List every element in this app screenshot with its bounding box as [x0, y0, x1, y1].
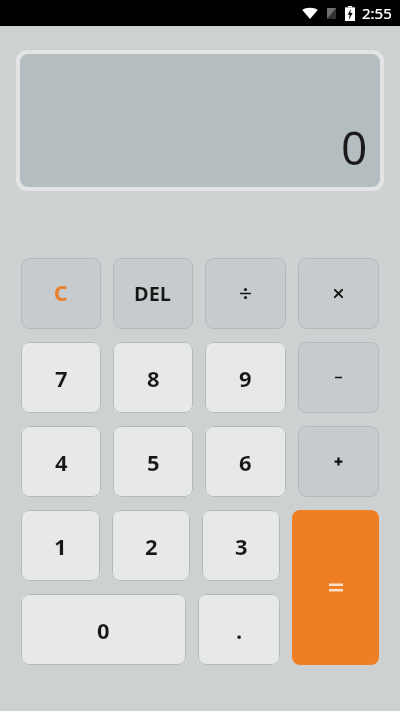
- staticText: 2: [145, 531, 158, 561]
- staticText: 5: [147, 447, 160, 477]
- button[interactable]: 5: [113, 426, 193, 497]
- button[interactable]: C: [21, 258, 101, 329]
- button[interactable]: 3: [202, 510, 280, 581]
- button[interactable]: 7: [21, 342, 101, 413]
- button[interactable]: .: [198, 594, 280, 665]
- staticText: 7: [55, 363, 68, 393]
- staticText: .: [236, 615, 243, 645]
- staticText: 2:55: [362, 3, 392, 23]
- staticText: 6: [239, 447, 252, 477]
- button[interactable]: 0: [21, 594, 186, 665]
- button[interactable]: 8: [113, 342, 193, 413]
- staticText: 0: [341, 116, 368, 179]
- button[interactable]: 2: [112, 510, 190, 581]
- button[interactable]: 6: [205, 426, 286, 497]
- staticText: 0: [97, 615, 110, 645]
- button[interactable]: Multiply: [298, 258, 379, 329]
- button[interactable]: Minus: [298, 342, 379, 413]
- button[interactable]: Divide: [205, 258, 286, 329]
- staticText: DEL: [134, 280, 172, 307]
- button[interactable]: 9: [205, 342, 286, 413]
- staticText: C: [54, 279, 68, 308]
- button[interactable]: 1: [21, 510, 100, 581]
- staticText: 3: [235, 531, 248, 561]
- staticText: 8: [147, 363, 160, 393]
- staticText: 4: [55, 447, 68, 477]
- staticText: 1: [54, 531, 67, 561]
- button[interactable]: Equals: [292, 510, 379, 665]
- staticText: 9: [239, 363, 252, 393]
- button[interactable]: DEL: [113, 258, 193, 329]
- button[interactable]: Plus: [298, 426, 379, 497]
- button[interactable]: 4: [21, 426, 101, 497]
